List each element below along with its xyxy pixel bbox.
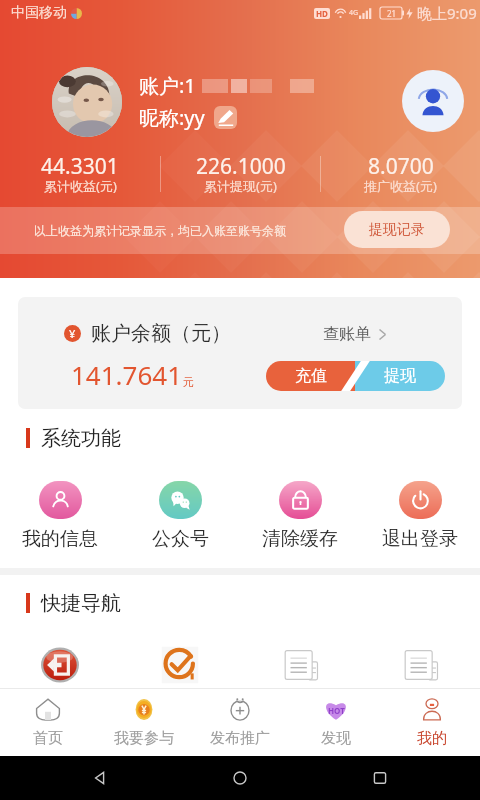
staticText: 账户:1	[139, 72, 196, 99]
button[interactable]: 发布推广	[192, 689, 288, 756]
button[interactable]: 我的信息	[0, 481, 120, 551]
staticText: 系统功能	[41, 426, 121, 451]
staticText: 累计收益(元)	[44, 177, 117, 195]
staticText: 我要参与	[114, 729, 174, 748]
staticText: 发现	[321, 729, 351, 748]
staticText: 首页	[33, 729, 63, 748]
staticText: 清除缓存	[262, 527, 338, 551]
staticText: 推广收益(元)	[364, 177, 437, 195]
staticText: 我的信息	[22, 527, 98, 551]
button[interactable]: Back	[90, 768, 110, 788]
button[interactable]: 退出登录	[360, 481, 480, 551]
staticText: 中国移动	[11, 4, 67, 22]
staticText: 退出登录	[382, 527, 458, 551]
staticText: 4G	[349, 8, 359, 18]
staticText: 141.7641	[71, 357, 183, 392]
staticText: 21	[387, 8, 397, 19]
button[interactable]: 提现	[355, 361, 445, 391]
staticText: 发布推广	[210, 729, 270, 748]
staticText: 元	[183, 375, 194, 389]
staticText: 晚上9:09	[417, 3, 477, 23]
button[interactable]: 我的	[384, 689, 480, 756]
button[interactable]: 提现记录	[344, 211, 450, 248]
staticText: 查账单	[323, 324, 371, 344]
button[interactable]: Home	[230, 768, 250, 788]
staticText: 累计提现(元)	[204, 177, 277, 195]
staticText: 账户余额（元）	[91, 321, 231, 346]
button[interactable]: Customer service	[402, 70, 464, 132]
button[interactable]: Edit nickname	[214, 106, 237, 129]
staticText: ¥	[69, 326, 76, 341]
button[interactable]: Quick nav item	[0, 646, 120, 684]
staticText: HD	[316, 8, 328, 19]
staticText: 我的	[417, 729, 447, 748]
button[interactable]: 我要参与	[96, 689, 192, 756]
button[interactable]: Quick nav item	[240, 646, 360, 684]
staticText: 8.0700	[368, 152, 434, 181]
button[interactable]: User avatar	[52, 67, 122, 137]
button[interactable]: 查账单	[323, 324, 386, 344]
button[interactable]: Recents	[370, 768, 390, 788]
staticText: 快捷导航	[41, 591, 121, 616]
button[interactable]: 清除缓存	[240, 481, 360, 551]
button[interactable]: 8.0700	[321, 150, 480, 197]
staticText: 44.3301	[41, 152, 119, 181]
staticText: 充值	[295, 366, 327, 386]
staticText: 以上收益为累计记录显示，均已入账至账号余额	[34, 223, 286, 238]
staticText: 226.1000	[196, 152, 286, 181]
button[interactable]: 充值	[266, 361, 355, 391]
button[interactable]: 公众号	[120, 481, 240, 551]
button[interactable]: 226.1000	[161, 150, 320, 197]
staticText: HOT	[328, 705, 345, 716]
button[interactable]: 首页	[0, 689, 96, 756]
button[interactable]: HOT	[288, 689, 384, 756]
button[interactable]: 44.3301	[0, 150, 160, 197]
staticText: 提现	[384, 366, 416, 386]
staticText: 公众号	[152, 527, 209, 551]
button[interactable]: Quick nav item	[120, 646, 240, 684]
button[interactable]: Quick nav item	[360, 646, 480, 684]
staticText: 提现记录	[369, 221, 425, 239]
staticText: 昵称:yy	[139, 104, 205, 131]
